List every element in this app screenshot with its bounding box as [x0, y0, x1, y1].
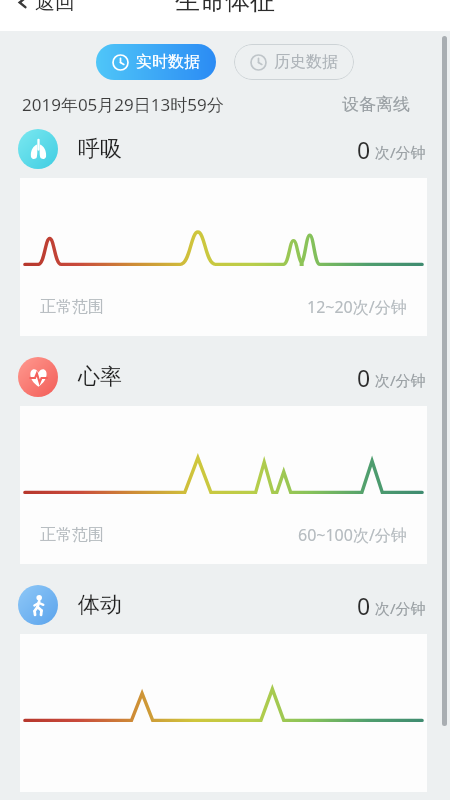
- staticText: 实时数据: [136, 52, 200, 72]
- button[interactable]: 返回: [12, 0, 79, 18]
- staticText: 60~100次/分钟: [298, 524, 407, 546]
- staticText: 正常范围: [40, 297, 104, 317]
- staticText: 心率: [78, 363, 122, 391]
- other: 呼吸: [18, 129, 58, 169]
- staticText: 生命体征: [175, 0, 275, 16]
- staticText: 次/分钟: [375, 598, 426, 618]
- staticText: 次/分钟: [375, 370, 426, 390]
- staticText: 0: [357, 590, 371, 621]
- staticText: 次/分钟: [375, 142, 426, 162]
- staticText: 呼吸: [78, 135, 122, 163]
- button[interactable]: 呼吸: [0, 120, 450, 178]
- button[interactable]: 体动: [0, 576, 450, 634]
- other: 体动: [18, 585, 58, 625]
- staticText: 12~20次/分钟: [307, 296, 407, 318]
- other: 心率: [18, 357, 58, 397]
- button[interactable]: 实时数据: [96, 44, 216, 80]
- staticText: 设备离线: [342, 94, 410, 115]
- staticText: 体动: [78, 591, 122, 619]
- button[interactable]: 历史数据: [234, 44, 354, 80]
- staticText: 0: [357, 362, 371, 393]
- staticText: 历史数据: [274, 52, 338, 72]
- staticText: 返回: [35, 0, 75, 15]
- button[interactable]: 心率: [0, 348, 450, 406]
- staticText: 0: [357, 134, 371, 165]
- staticText: 正常范围: [40, 525, 104, 545]
- staticText: 2019年05月29日13时59分: [22, 93, 224, 116]
